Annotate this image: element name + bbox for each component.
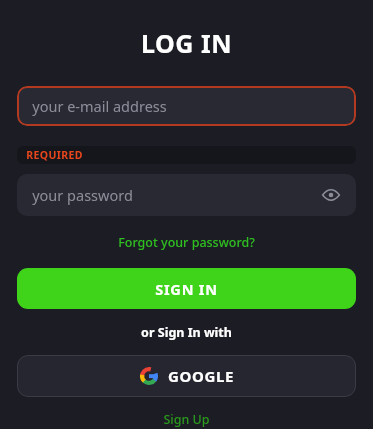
button[interactable]: Show password xyxy=(318,182,344,208)
staticText: Sign Up xyxy=(163,411,210,427)
button[interactable]: SIGN IN xyxy=(17,268,356,309)
staticText: GOOGLE xyxy=(168,366,234,386)
button[interactable]: Forgot your password? xyxy=(112,232,261,253)
button[interactable]: your password xyxy=(17,174,356,216)
staticText: LOG IN xyxy=(141,26,232,60)
staticText: your password xyxy=(32,185,133,205)
button[interactable]: Sign Up xyxy=(155,409,218,429)
button[interactable]: your e-mail address xyxy=(17,86,356,126)
button[interactable]: GOOGLE xyxy=(17,355,356,397)
staticText: SIGN IN xyxy=(155,279,218,299)
staticText: REQUIRED xyxy=(26,148,83,162)
staticText: your e-mail address xyxy=(32,96,167,116)
staticText: or Sign In with xyxy=(141,324,232,341)
staticText: Forgot your password? xyxy=(118,234,255,251)
